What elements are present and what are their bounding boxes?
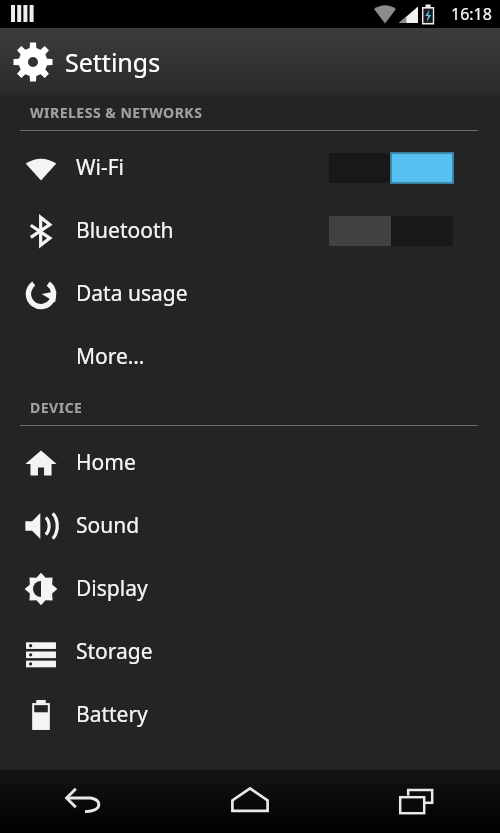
button[interactable] bbox=[0, 746, 500, 809]
staticText: Display bbox=[76, 574, 148, 603]
staticText: Sound bbox=[76, 511, 140, 540]
button[interactable]: Settings bbox=[0, 28, 500, 95]
button[interactable]: Sound bbox=[0, 494, 500, 557]
staticText: Storage bbox=[76, 637, 153, 666]
staticText: WIRELESS & NETWORKS bbox=[30, 103, 203, 122]
button[interactable]: Bluetooth bbox=[0, 199, 500, 262]
staticText: More… bbox=[76, 342, 145, 371]
staticText: Home bbox=[76, 448, 136, 477]
other: Settings bbox=[12, 41, 54, 83]
staticText: DEVICE bbox=[30, 398, 83, 417]
button[interactable]: More… bbox=[0, 325, 500, 388]
button[interactable]: Home bbox=[0, 431, 500, 494]
button[interactable]: Home bbox=[166, 770, 333, 833]
button[interactable]: Battery bbox=[0, 683, 500, 746]
staticText: 16:18 bbox=[451, 3, 492, 25]
staticText: Settings bbox=[65, 45, 161, 79]
button[interactable]: Wi-Fi bbox=[0, 136, 500, 199]
button[interactable]: Display bbox=[0, 557, 500, 620]
button[interactable]: Storage bbox=[0, 620, 500, 683]
staticText: Data usage bbox=[76, 279, 188, 308]
button[interactable]: Data usage bbox=[0, 262, 500, 325]
button[interactable]: Recent apps bbox=[333, 770, 500, 833]
button[interactable]: Switch off bbox=[329, 216, 453, 246]
staticText: Bluetooth bbox=[76, 216, 174, 245]
staticText: Wi-Fi bbox=[76, 153, 125, 182]
button[interactable]: Switch on bbox=[329, 153, 453, 183]
staticText: Battery bbox=[76, 700, 148, 729]
button[interactable]: Back bbox=[0, 770, 166, 833]
